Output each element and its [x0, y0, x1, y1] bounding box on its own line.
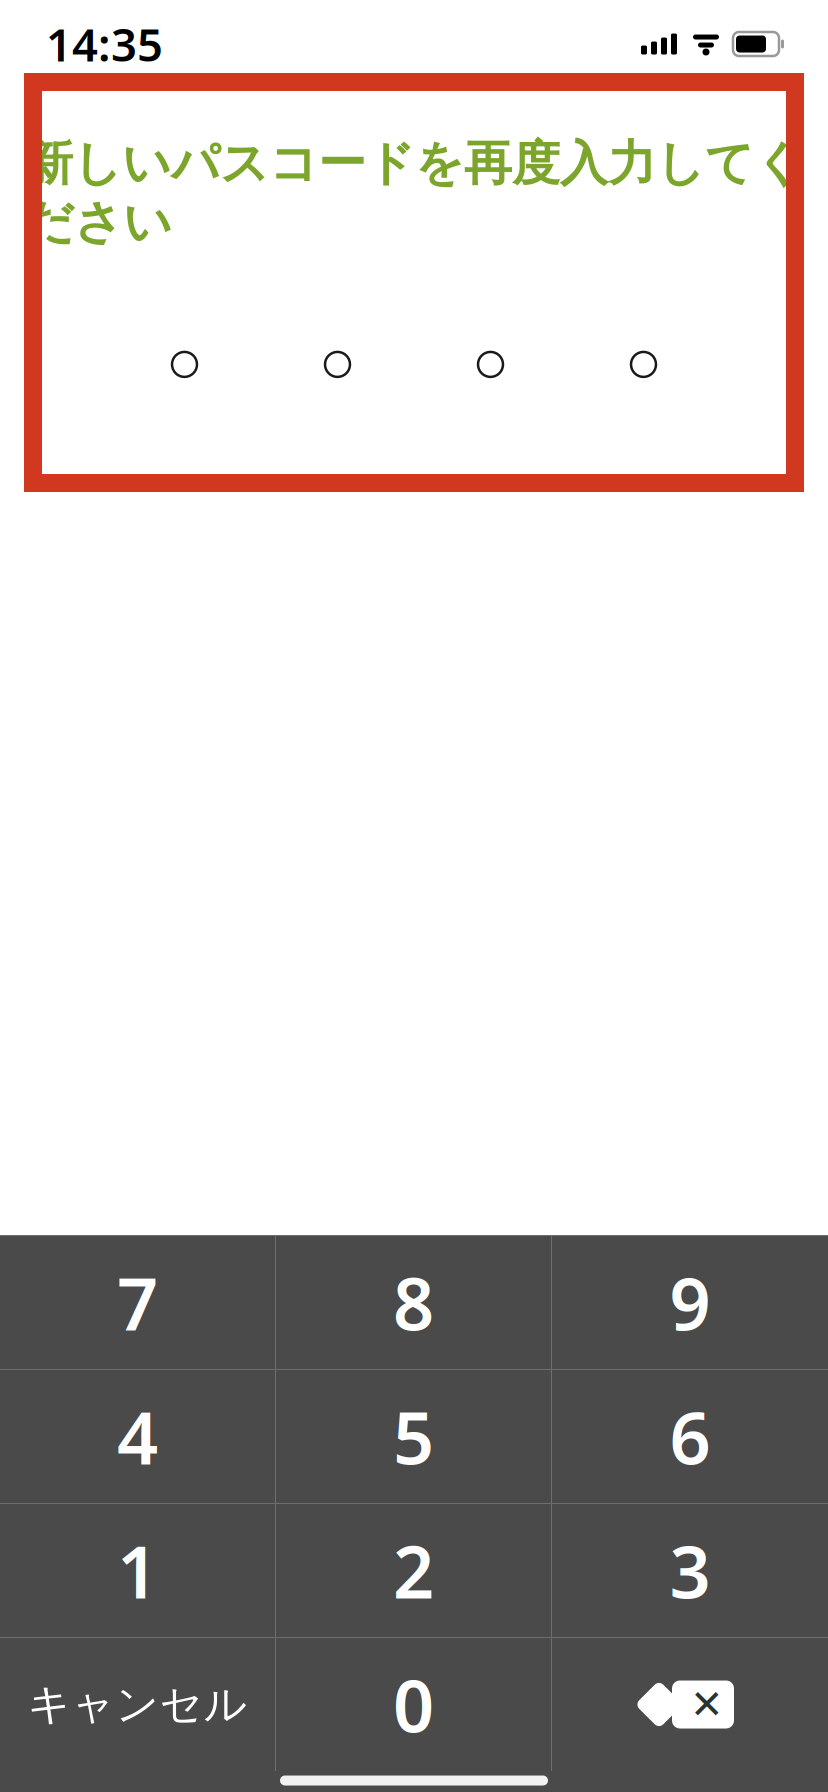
button[interactable]: 1 [0, 1504, 275, 1637]
staticText: 5 [393, 1389, 434, 1484]
staticText: 4 [117, 1389, 158, 1484]
staticText: 9 [669, 1255, 710, 1350]
button[interactable]: 8 [276, 1236, 551, 1369]
staticText: 7 [117, 1255, 158, 1350]
button[interactable]: 2 [276, 1504, 551, 1637]
button[interactable]: Delete [552, 1638, 828, 1771]
staticText: ✕ [690, 1682, 724, 1727]
button[interactable]: 5 [276, 1370, 551, 1503]
button[interactable]: 0 [276, 1638, 551, 1771]
button[interactable]: 6 [552, 1370, 828, 1503]
staticText: 0 [393, 1657, 434, 1752]
button[interactable]: 7 [0, 1236, 275, 1369]
staticText: 1 [117, 1523, 158, 1618]
button[interactable]: 4 [0, 1370, 275, 1503]
staticText: キャンセル [27, 1678, 247, 1731]
button[interactable]: キャンセル [0, 1638, 275, 1771]
staticText: 8 [393, 1255, 434, 1350]
staticText: 新しいパスコードを再度入力してください [25, 134, 803, 252]
staticText: 14:35 [46, 14, 163, 74]
staticText: 2 [393, 1523, 434, 1618]
staticText: 3 [669, 1523, 710, 1618]
staticText: 6 [669, 1389, 710, 1484]
button[interactable]: 9 [552, 1236, 828, 1369]
button[interactable]: 3 [552, 1504, 828, 1637]
